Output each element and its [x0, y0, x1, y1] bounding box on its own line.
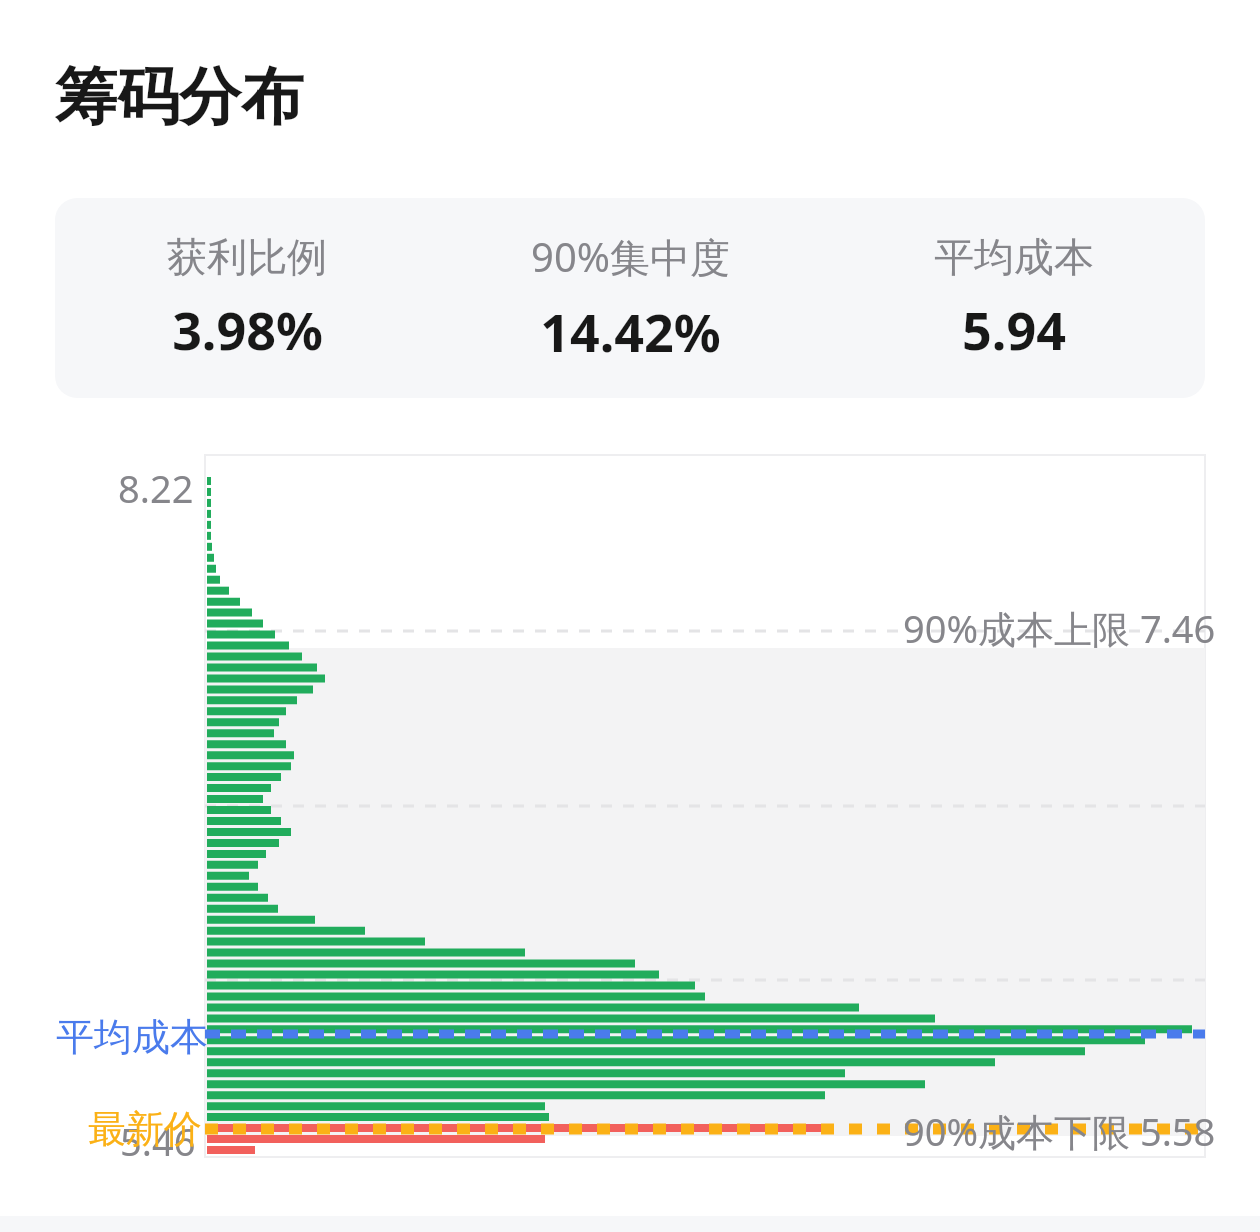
- staticText: 14.42%: [540, 296, 721, 367]
- button[interactable]: 平均成本: [822, 232, 1205, 365]
- staticText: 90%成本下限 5.58: [903, 1105, 1216, 1157]
- staticText: 90%成本上限 7.46: [903, 602, 1216, 654]
- staticText: 8.22: [118, 462, 194, 514]
- button[interactable]: 获利比例: [55, 232, 439, 365]
- staticText: 获利比例: [167, 232, 327, 282]
- staticText: 90%集中度: [531, 229, 730, 284]
- staticText: 3.98%: [172, 294, 323, 365]
- button[interactable]: 获利比例: [55, 198, 1205, 398]
- staticText: 平均成本: [934, 232, 1094, 282]
- staticText: 筹码分布: [55, 58, 303, 136]
- staticText: 最新价: [88, 1105, 202, 1153]
- staticText: 平均成本: [56, 1013, 208, 1061]
- button[interactable]: 90%集中度: [439, 229, 822, 367]
- staticText: 5.94: [962, 294, 1066, 365]
- staticText: 5.46: [120, 1115, 196, 1167]
